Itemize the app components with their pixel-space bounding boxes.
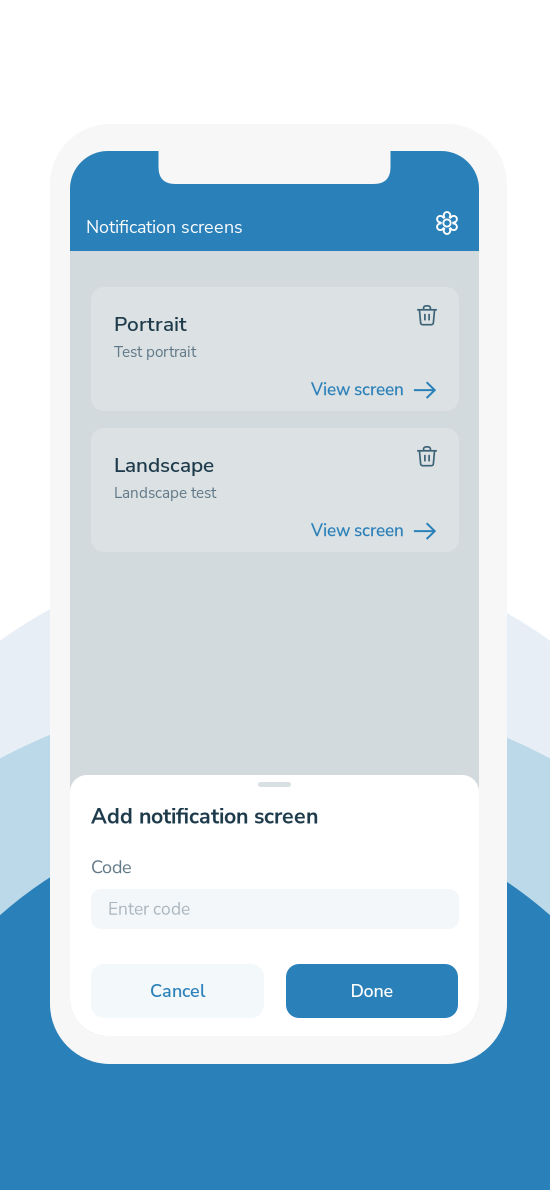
staticText: Notification screens [86,215,243,239]
staticText: Done [350,979,393,1003]
staticText: Code [91,855,132,880]
button[interactable]: Delete Landscape [409,438,445,474]
staticText: Landscape test [114,483,216,503]
staticText: Landscape [114,451,214,479]
button[interactable]: View screen [305,511,442,550]
button[interactable]: View screen [305,370,442,409]
button[interactable]: Done [286,964,458,1018]
staticText: View screen [311,519,404,542]
staticText: Test portrait [114,342,196,362]
staticText: View screen [311,378,404,401]
button[interactable]: Cancel [91,964,264,1018]
staticText: Portrait [114,310,187,338]
staticText: Enter code [108,897,190,921]
button[interactable]: Delete Portrait [409,297,445,333]
staticText: Cancel [150,979,205,1003]
button[interactable]: Settings [429,205,465,241]
staticText: Add notification screen [91,802,318,831]
